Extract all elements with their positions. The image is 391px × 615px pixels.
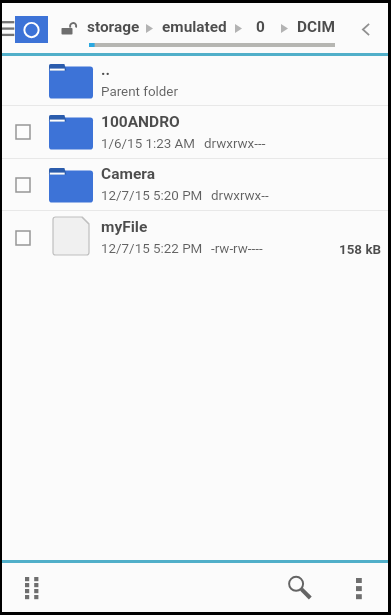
button[interactable]: 0 (252, 14, 269, 40)
staticText: 12/7/15 5:22 PM (101, 241, 203, 257)
button[interactable]: myFile (2, 211, 388, 264)
staticText: 1/6/15 1:23 AM (101, 136, 196, 152)
staticText: drwxrwx-- (211, 188, 269, 204)
staticText: Parent folder (101, 84, 179, 100)
staticText: drwxrwx--- (204, 136, 266, 152)
button[interactable]: App icon (15, 16, 48, 43)
staticText: myFile (101, 218, 148, 236)
staticText: 0 (256, 18, 265, 36)
button[interactable]: Camera (2, 159, 388, 211)
staticText: .. (101, 61, 111, 79)
staticText: -rw-rw---- (211, 241, 263, 257)
staticText: DCIM (297, 18, 336, 36)
staticText: Camera (101, 165, 156, 183)
staticText: emulated (162, 18, 227, 36)
button[interactable]: Storage unlocked (59, 19, 81, 37)
staticText: 100ANDRO (101, 113, 180, 131)
button[interactable]: More options (342, 566, 376, 610)
button[interactable]: Navigate up (352, 12, 380, 46)
staticText: 12/7/15 5:20 PM (101, 188, 203, 204)
button[interactable]: storage (83, 14, 144, 40)
staticText: 158 kB (339, 242, 382, 258)
staticText: storage (87, 18, 140, 36)
button[interactable]: Grid view (12, 566, 50, 610)
button[interactable]: .. (2, 56, 388, 106)
button[interactable]: DCIM (293, 14, 340, 40)
button[interactable]: 100ANDRO (2, 106, 388, 159)
button[interactable]: emulated (157, 14, 232, 40)
button[interactable]: Search (278, 566, 322, 610)
